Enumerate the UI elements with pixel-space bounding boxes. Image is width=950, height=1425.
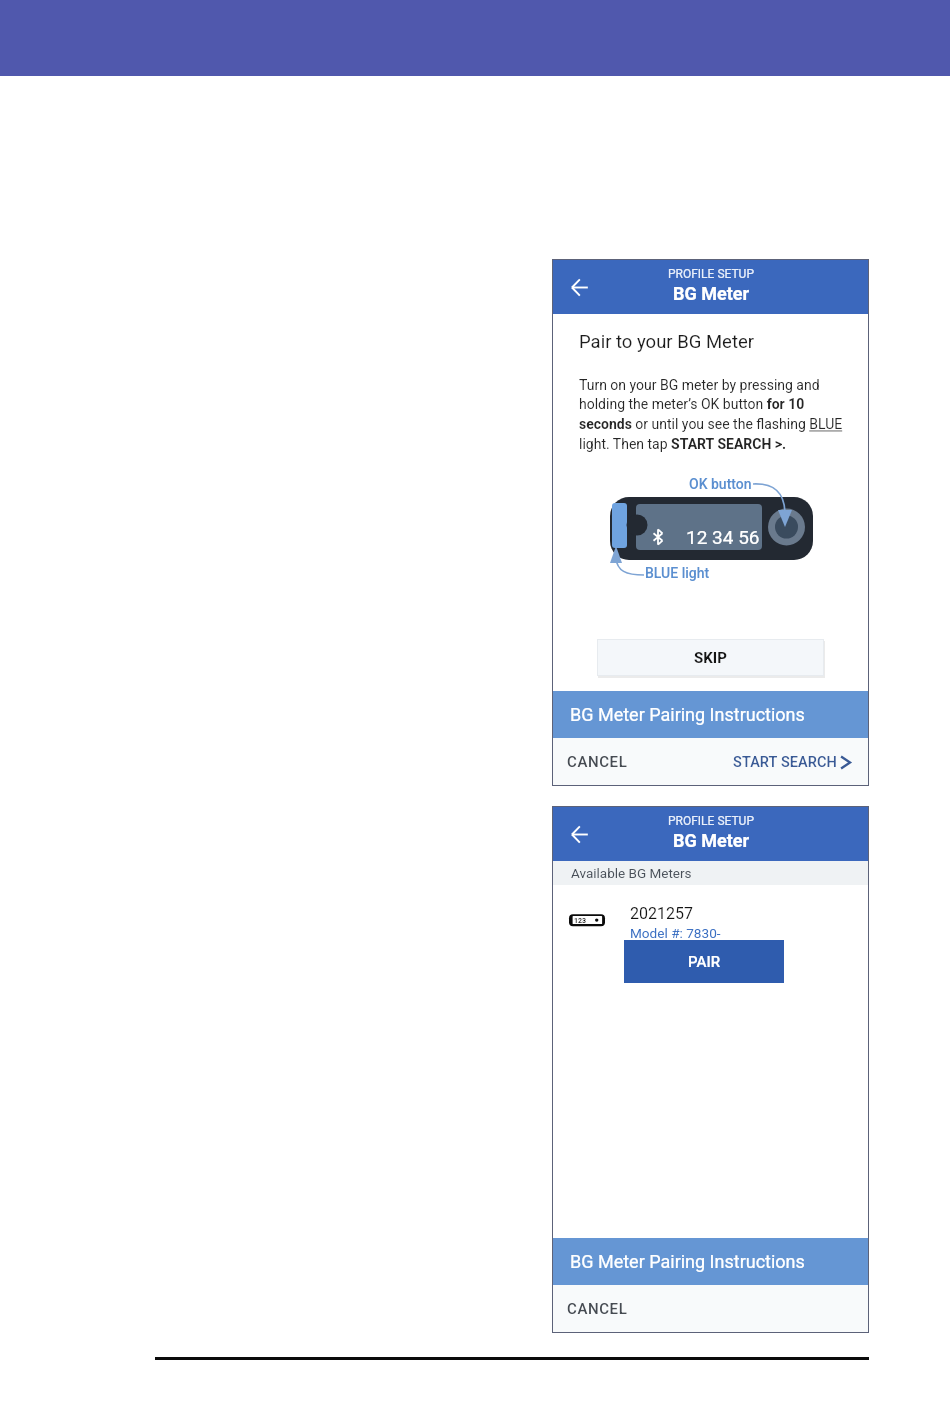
staticText: PROFILE SETUP [668, 267, 754, 281]
staticText: 123 [574, 917, 587, 925]
staticText: SKIP [694, 649, 727, 667]
staticText: BG Meter Pairing Instructions [570, 1251, 805, 1272]
staticText: BG Meter Pairing Instructions [570, 704, 805, 725]
staticText: PAIR [688, 953, 721, 971]
button[interactable]: SKIP [597, 639, 824, 676]
button[interactable]: Back [561, 816, 597, 852]
staticText: CANCEL [567, 753, 628, 771]
staticText: 2021257 [630, 904, 693, 923]
staticText: START SEARCH [733, 754, 837, 771]
staticText: Turn on your BG meter by pressing and ho… [579, 377, 853, 453]
staticText: 12 34 56 [686, 526, 760, 548]
button[interactable]: CANCEL [567, 1294, 628, 1324]
staticText: BG Meter [673, 283, 750, 304]
staticText: PROFILE SETUP [668, 814, 754, 828]
staticText: Pair to your BG Meter [579, 331, 755, 353]
staticText: CANCEL [567, 1300, 628, 1318]
staticText: BLUE light [645, 565, 710, 581]
staticText: Model #: 7830- [630, 925, 721, 941]
other: BG meter [569, 913, 605, 933]
button[interactable]: BG meter [552, 904, 869, 984]
button[interactable]: CANCEL [567, 747, 628, 777]
button[interactable]: BG Meter Pairing Instructions [552, 1238, 869, 1285]
staticText: BG Meter [673, 830, 750, 851]
button[interactable]: PAIR [624, 940, 784, 983]
button[interactable]: BG Meter Pairing Instructions [552, 691, 869, 738]
staticText: Available BG Meters [571, 865, 692, 881]
button[interactable]: START SEARCH [731, 748, 858, 777]
staticText: OK button [689, 476, 752, 492]
button[interactable]: Back [561, 269, 597, 305]
